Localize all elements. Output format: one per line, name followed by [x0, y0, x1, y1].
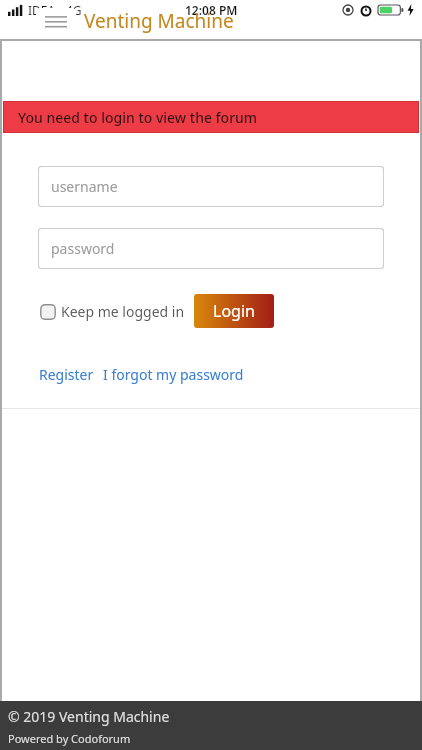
staticText: You need to login to view the forum — [18, 108, 258, 127]
button[interactable]: username — [39, 167, 383, 206]
staticText: Keep me logged in — [61, 302, 185, 321]
staticText: I forgot my password — [103, 365, 244, 384]
staticText: username — [51, 177, 118, 196]
button[interactable]: I forgot my password — [103, 365, 244, 384]
staticText: Register — [39, 365, 94, 384]
staticText: Login — [213, 300, 255, 322]
staticText: password — [51, 239, 115, 258]
staticText: Venting Machine — [84, 8, 234, 34]
staticText: © 2019 Venting Machine — [8, 707, 170, 726]
button[interactable]: Menu — [36, 8, 76, 34]
staticText: IDEA__4G — [28, 2, 82, 18]
button[interactable]: Register — [39, 365, 94, 384]
button[interactable]: Login — [194, 294, 274, 328]
staticText: Powered by Codoforum — [8, 731, 131, 746]
staticText: 12:08 PM — [185, 2, 238, 18]
button[interactable]: password — [39, 229, 383, 268]
button[interactable]: Keep me logged in — [40, 302, 185, 321]
